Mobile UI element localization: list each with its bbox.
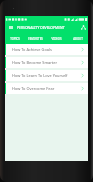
staticText: ABOUT [73, 37, 83, 41]
button[interactable]: VIDEOS [46, 32, 67, 44]
staticText: FAVORITES [28, 37, 43, 41]
button[interactable]: Open navigation menu [5, 23, 17, 32]
staticText: How To Learn To Love Yourself [12, 73, 68, 78]
button[interactable]: Share [78, 23, 88, 32]
staticText: How To Overcome Fear [12, 86, 55, 91]
staticText: PERSONALITY DEVELOPMENT [17, 25, 65, 30]
button[interactable]: How To Learn To Love Yourself [5, 70, 88, 81]
button[interactable]: How To Achieve Goals [5, 44, 88, 55]
button[interactable]: ABOUT [67, 32, 88, 44]
staticText: TOPICS [10, 37, 20, 41]
button[interactable]: How To Become Smarter [5, 57, 88, 68]
button[interactable]: How To Overcome Fear [5, 83, 88, 94]
staticText: How To Become Smarter [12, 60, 58, 65]
button[interactable]: TOPICS [5, 32, 25, 44]
staticText: How To Achieve Goals [12, 47, 52, 52]
button[interactable]: FAVORITES [25, 32, 46, 44]
staticText: VIDEOS [51, 37, 62, 41]
